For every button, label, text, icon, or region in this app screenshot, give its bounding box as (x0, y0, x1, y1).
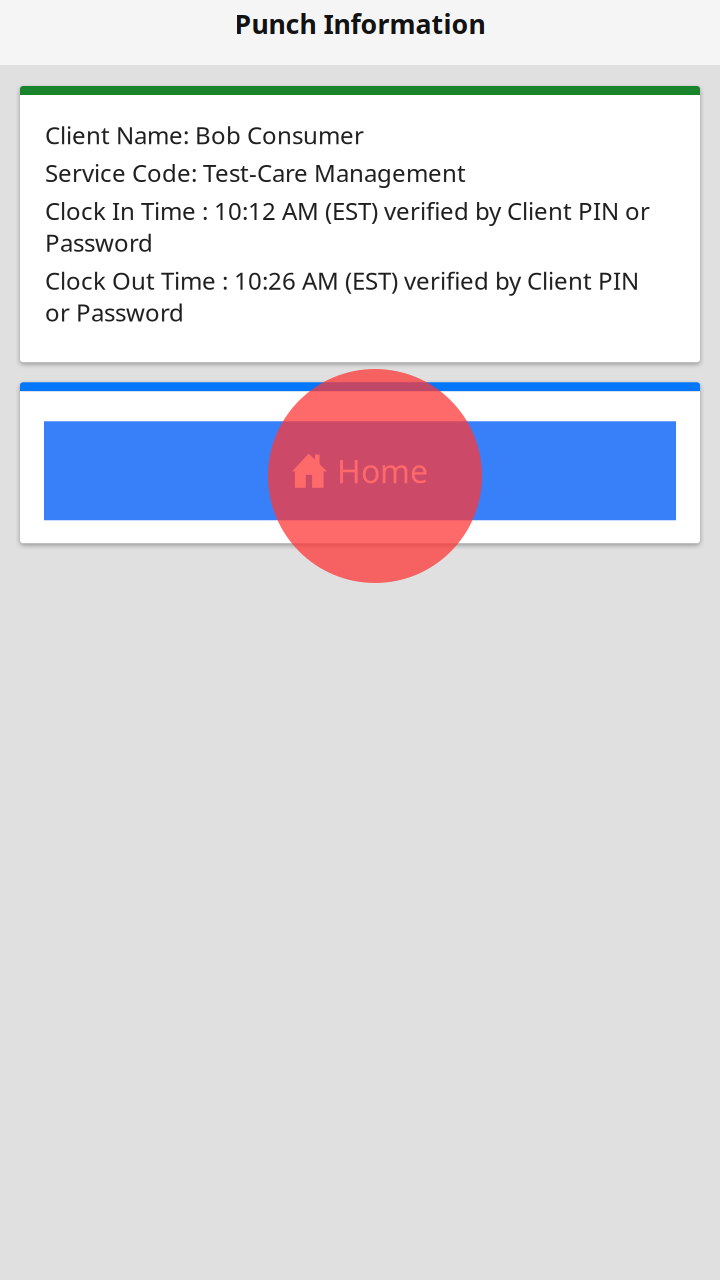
staticText: Home (337, 449, 428, 492)
staticText: Clock In Time : 10:12 AM (EST) verified … (45, 195, 650, 258)
staticText: Service Code: Test-Care Management (45, 157, 466, 189)
staticText: Client Name: Bob Consumer (45, 119, 364, 151)
staticText: Clock Out Time : 10:26 AM (EST) verified… (45, 264, 639, 328)
staticText: Punch Information (234, 6, 485, 41)
button[interactable]: Home (44, 421, 676, 520)
